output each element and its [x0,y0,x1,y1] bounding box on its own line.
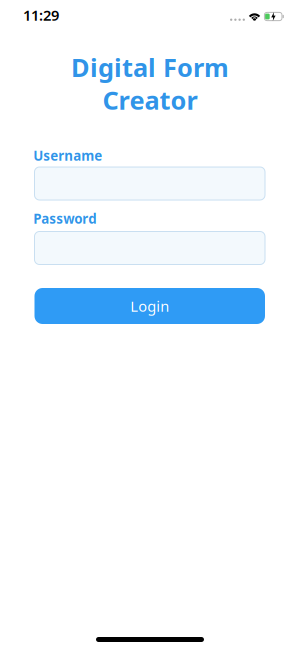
staticText: Creator [102,83,197,117]
staticText: Login [130,296,169,316]
staticText: Password [33,210,96,227]
staticText: Username [33,147,102,164]
button[interactable]: Login [34,288,265,324]
staticText: 11:29 [23,5,59,25]
staticText: Digital Form [71,50,229,84]
